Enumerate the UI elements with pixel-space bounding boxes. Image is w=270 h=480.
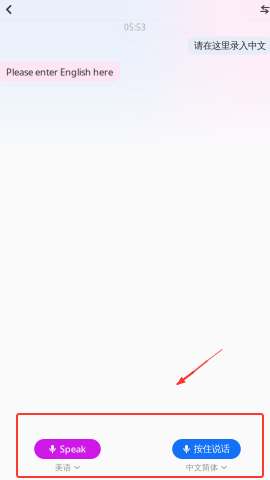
button[interactable]: Back [0,0,19,19]
staticText: Speak [60,443,86,455]
staticText: 05:53 [124,22,146,33]
staticText: 美语 [55,463,71,472]
staticText: Please enter English here [6,66,113,78]
button[interactable]: Speak [34,439,101,459]
staticText: 请在这里录入中文 [194,40,266,51]
staticText: 中文简体 [186,463,218,472]
staticText: 按住说话 [194,443,230,455]
button[interactable]: 美语 [55,463,80,472]
button[interactable]: 按住说话 [172,439,241,459]
button[interactable]: 中文简体 [186,463,227,472]
button[interactable]: Swap languages [255,0,270,19]
